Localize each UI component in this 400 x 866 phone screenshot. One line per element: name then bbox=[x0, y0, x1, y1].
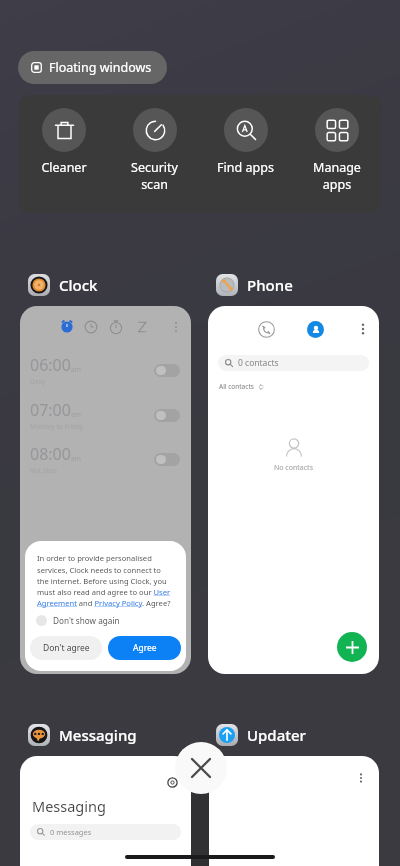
button[interactable]: Don't agree bbox=[30, 636, 102, 660]
staticText: 06:00 bbox=[30, 354, 71, 376]
staticText: Clock bbox=[59, 275, 98, 295]
staticText: Messaging bbox=[32, 796, 106, 816]
staticText: 08:00 bbox=[30, 443, 71, 465]
button[interactable]: 06:00 bbox=[20, 306, 191, 674]
staticText: Cleaner bbox=[41, 159, 87, 176]
button[interactable]: Floating windows bbox=[18, 51, 167, 84]
staticText: Manage apps bbox=[313, 159, 361, 193]
button[interactable]: 0 messages bbox=[30, 824, 181, 840]
button[interactable]: Messaging bbox=[20, 756, 191, 866]
staticText: Don't show again bbox=[53, 615, 120, 626]
staticText: Phone bbox=[247, 275, 293, 295]
staticText: Updater bbox=[247, 725, 306, 745]
button[interactable]: Find apps bbox=[200, 95, 291, 213]
staticText: 0 messages bbox=[50, 827, 92, 837]
button[interactable]: 06:00 bbox=[30, 354, 180, 386]
staticText: 07:00 bbox=[30, 399, 71, 421]
staticText: Monday to Friday bbox=[30, 422, 84, 431]
staticText: Agree bbox=[133, 642, 157, 654]
staticText: Find apps bbox=[217, 159, 274, 176]
button[interactable]: 07:00 bbox=[30, 399, 180, 431]
staticText: Security scan bbox=[131, 159, 178, 193]
button[interactable]: Agree bbox=[108, 636, 181, 660]
staticText: Daily bbox=[30, 377, 46, 386]
button[interactable]: Cleaner bbox=[18, 95, 109, 213]
staticText: Not Stop bbox=[30, 466, 57, 475]
button[interactable]: Don't show again bbox=[36, 615, 120, 626]
button[interactable]: Manage apps bbox=[291, 95, 382, 213]
staticText: am bbox=[71, 454, 81, 463]
staticText: 0 contacts bbox=[238, 357, 279, 369]
staticText: am bbox=[71, 365, 81, 374]
button[interactable]: 0 contacts bbox=[208, 306, 379, 674]
button[interactable]: Close all bbox=[175, 742, 227, 794]
button[interactable]: Add contact bbox=[337, 632, 367, 662]
staticText: No contacts bbox=[274, 463, 313, 473]
button[interactable]: More options bbox=[208, 756, 379, 866]
staticText: In order to provide personalised service… bbox=[37, 553, 174, 608]
button[interactable]: Settings bbox=[167, 777, 178, 788]
staticText: All contacts bbox=[219, 382, 254, 391]
staticText: Floating windows bbox=[49, 59, 152, 76]
button[interactable]: 0 contacts bbox=[218, 355, 369, 371]
staticText: Don't agree bbox=[43, 642, 90, 654]
staticText: Messaging bbox=[59, 725, 137, 745]
button[interactable]: More options bbox=[355, 772, 367, 784]
staticText: am bbox=[71, 410, 81, 419]
button[interactable]: 08:00 bbox=[30, 443, 180, 475]
button[interactable]: Security scan bbox=[109, 95, 200, 213]
